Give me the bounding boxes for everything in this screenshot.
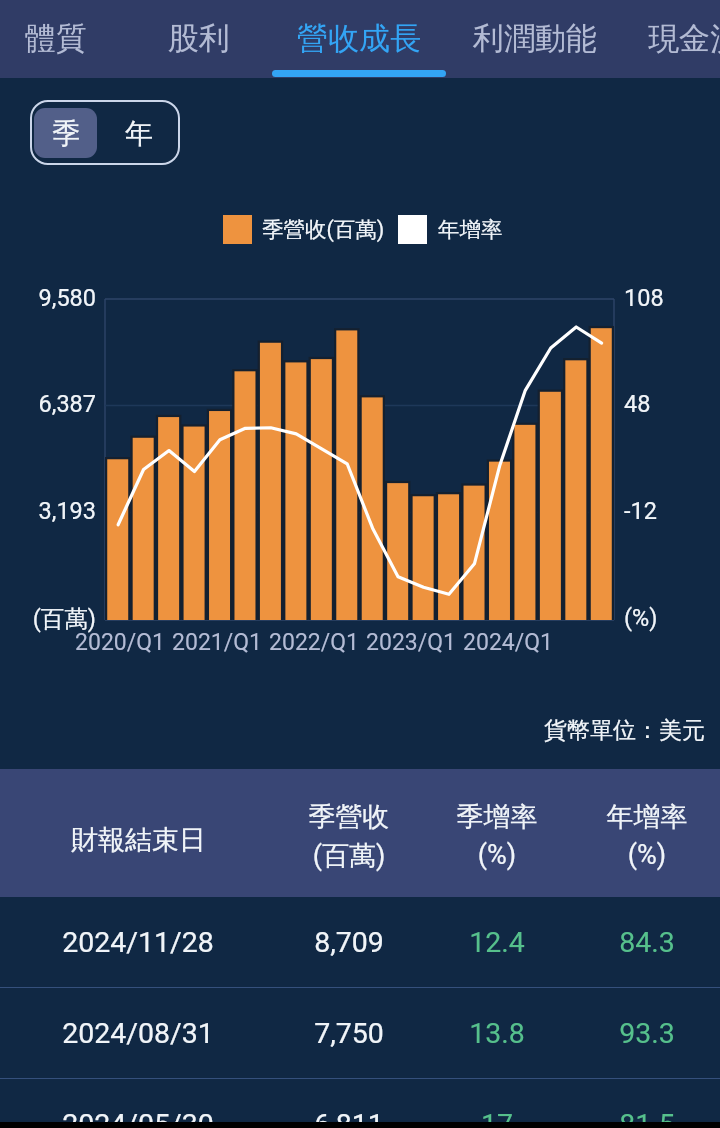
staticText: 2024/08/31: [28, 1017, 248, 1050]
button[interactable]: 2024/08/31: [0, 988, 720, 1078]
staticText: (%): [624, 604, 720, 632]
staticText: 季增率: [397, 800, 597, 834]
button[interactable]: 利潤動能: [459, 0, 611, 78]
staticText: 營收成長: [297, 19, 421, 58]
staticText: (%): [547, 839, 720, 871]
staticText: 3,193: [0, 497, 96, 525]
button[interactable]: 季: [34, 108, 97, 158]
staticText: 股利: [168, 19, 230, 58]
staticText: -12: [624, 497, 720, 525]
button[interactable]: 年: [107, 108, 170, 158]
button[interactable]: 2024/11/28: [0, 897, 720, 987]
button[interactable]: 體質: [11, 0, 101, 78]
staticText: 財報結束日: [71, 823, 206, 857]
button[interactable]: 股利: [154, 0, 244, 78]
staticText: 2024/11/28: [28, 926, 248, 959]
staticText: 48: [624, 390, 720, 418]
staticText: 13.8: [387, 1017, 607, 1050]
staticText: 84.3: [537, 926, 720, 959]
staticText: 季營收: [249, 800, 449, 834]
staticText: 17: [387, 1108, 607, 1128]
staticText: 12.4: [387, 926, 607, 959]
staticText: 6,811: [239, 1108, 459, 1128]
staticText: 貨幣單位：美元: [544, 716, 705, 745]
staticText: 8,709: [239, 926, 459, 959]
button[interactable]: 現金流: [634, 0, 720, 78]
staticText: (%): [397, 839, 597, 871]
staticText: 6,387: [0, 390, 96, 418]
staticText: 季營收(百萬): [262, 216, 385, 243]
staticText: 年增率: [438, 216, 503, 243]
staticText: (百萬): [249, 839, 449, 873]
staticText: 93.3: [537, 1017, 720, 1050]
staticText: 2021/Q1: [157, 629, 277, 656]
staticText: 季: [52, 116, 80, 151]
staticText: 9,580: [0, 284, 96, 312]
staticText: 7,750: [239, 1017, 459, 1050]
staticText: 2020/Q1: [60, 629, 180, 656]
staticText: 2024/Q1: [448, 629, 568, 656]
staticText: 利潤動能: [473, 19, 597, 58]
staticText: 2024/05/30: [28, 1108, 248, 1128]
staticText: 體質: [25, 19, 87, 58]
staticText: 2023/Q1: [351, 629, 471, 656]
staticText: 年增率: [547, 800, 720, 834]
staticText: (百萬): [0, 604, 96, 634]
staticText: 2022/Q1: [254, 629, 374, 656]
staticText: 81.5: [537, 1108, 720, 1128]
button[interactable]: 2024/05/30: [0, 1079, 720, 1128]
staticText: 108: [624, 284, 720, 312]
staticText: 現金流: [648, 19, 720, 58]
staticText: 年: [125, 116, 153, 151]
button[interactable]: 營收成長: [283, 0, 435, 78]
